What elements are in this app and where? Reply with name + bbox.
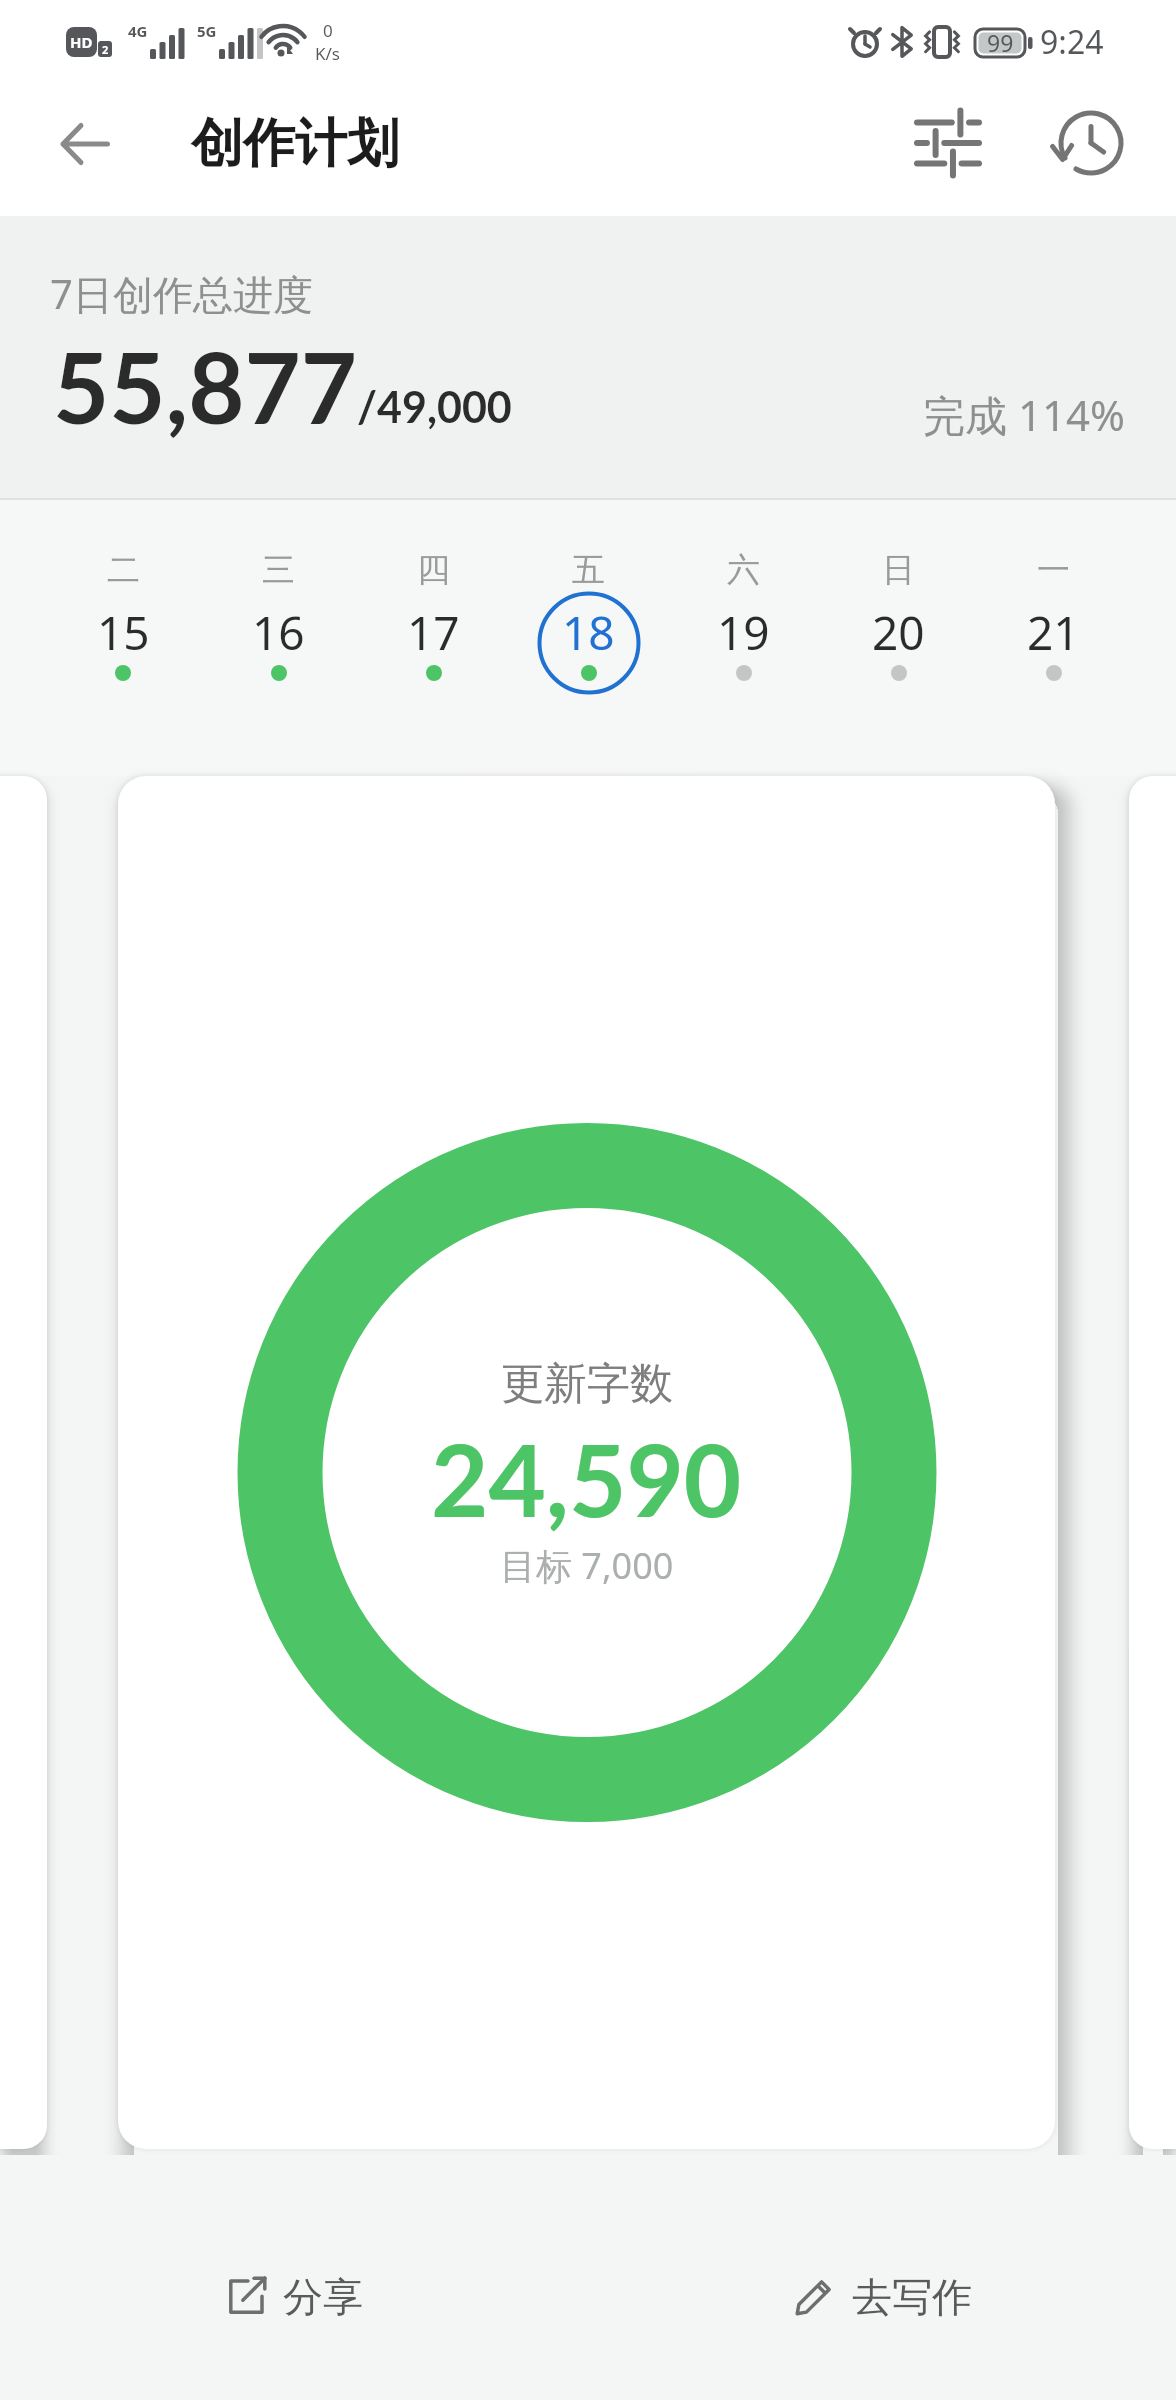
staticText: 去写作 <box>852 2272 972 2322</box>
staticText: 20 <box>872 601 925 661</box>
staticText: 目标 7,000 <box>500 1541 674 1590</box>
button[interactable]: 二 <box>45 500 201 776</box>
staticText: 五 <box>572 549 605 591</box>
staticText: /49,000 <box>357 381 512 433</box>
staticText: 4G <box>128 21 148 41</box>
button[interactable]: 五 <box>511 500 666 776</box>
button[interactable]: 去写作 <box>588 2155 1176 2400</box>
button[interactable]: 更新字数 <box>118 776 1055 2149</box>
staticText: 17 <box>407 601 460 661</box>
staticText: 55,877 <box>53 328 357 444</box>
staticText: K/s <box>315 42 340 65</box>
staticText: 16 <box>252 601 305 661</box>
staticText: 21 <box>1027 601 1080 661</box>
staticText: 2 <box>102 42 109 57</box>
button[interactable]: 日 <box>821 500 976 776</box>
staticText: 四 <box>417 549 450 591</box>
button[interactable] <box>48 108 120 180</box>
staticText: 24,590 <box>431 1419 742 1538</box>
staticText: 分享 <box>283 2272 363 2322</box>
button[interactable]: 一 <box>976 500 1131 776</box>
staticText: 19 <box>717 601 770 661</box>
staticText: 日 <box>882 549 915 591</box>
staticText: 更新字数 <box>501 1357 673 1411</box>
button[interactable]: 分享 <box>0 2155 588 2400</box>
button[interactable] <box>908 103 988 183</box>
staticText: 完成 114% <box>923 386 1125 443</box>
staticText: 7日创作总进度 <box>50 266 313 321</box>
staticText: 0 <box>323 19 333 42</box>
staticText: 5G <box>197 21 217 41</box>
button[interactable]: 四 <box>356 500 511 776</box>
staticText: HD <box>70 32 93 52</box>
staticText: 15 <box>97 601 150 661</box>
button[interactable] <box>1051 103 1131 183</box>
staticText: 创作计划 <box>191 111 399 177</box>
button[interactable]: 三 <box>201 500 356 776</box>
staticText: 六 <box>727 549 760 591</box>
staticText: 9:24 <box>1040 20 1104 64</box>
staticText: 一 <box>1037 549 1070 591</box>
button[interactable]: 六 <box>666 500 821 776</box>
staticText: 99 <box>987 27 1014 58</box>
staticText: 三 <box>262 549 295 591</box>
staticText: 二 <box>107 549 140 591</box>
staticText: 18 <box>562 601 615 661</box>
